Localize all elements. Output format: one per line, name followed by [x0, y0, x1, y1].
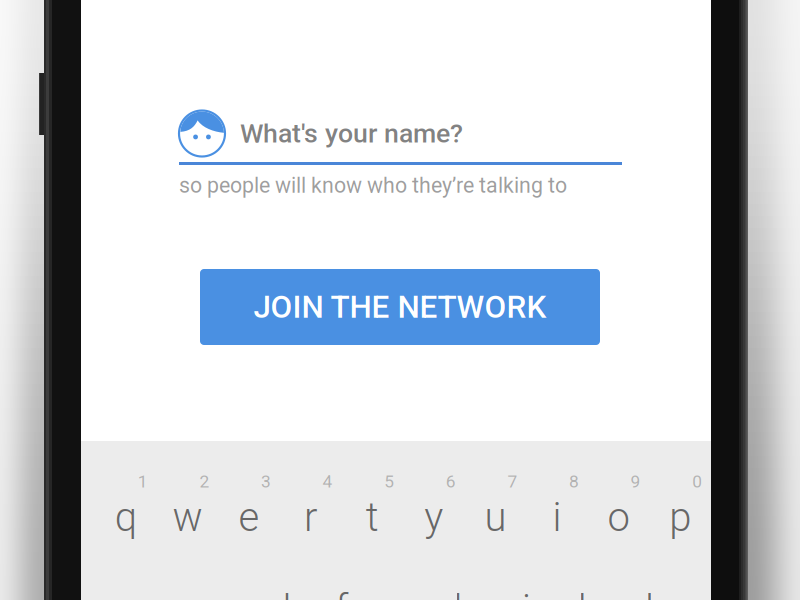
- staticText: q: [115, 494, 137, 541]
- staticText: o: [608, 494, 630, 541]
- staticText: i: [552, 494, 561, 541]
- staticText: 7: [507, 471, 517, 492]
- staticText: e: [238, 494, 259, 541]
- button[interactable]: l: [619, 586, 680, 600]
- staticText: so people will know who they’re talking …: [179, 173, 567, 198]
- button[interactable]: What's your name?: [179, 110, 622, 165]
- staticText: 4: [323, 471, 333, 492]
- staticText: 8: [569, 471, 579, 492]
- staticText: 3: [261, 471, 271, 492]
- button[interactable]: f: [311, 586, 372, 600]
- staticText: 0: [692, 471, 702, 492]
- staticText: h: [454, 586, 476, 600]
- staticText: r: [304, 494, 317, 541]
- staticText: 1: [138, 471, 148, 492]
- button[interactable]: JOIN THE NETWORK: [200, 269, 600, 345]
- button[interactable]: 5: [341, 468, 403, 540]
- staticText: d: [269, 586, 291, 600]
- button[interactable]: 4: [280, 468, 341, 540]
- staticText: u: [484, 494, 506, 541]
- button[interactable]: 0: [649, 468, 711, 540]
- staticText: j: [522, 586, 531, 600]
- button[interactable]: j: [496, 586, 557, 600]
- button[interactable]: 7: [465, 468, 526, 540]
- staticText: 9: [631, 471, 641, 492]
- staticText: w: [172, 494, 202, 541]
- staticText: 2: [199, 471, 209, 492]
- button[interactable]: 2: [157, 468, 218, 540]
- button[interactable]: 6: [403, 468, 465, 540]
- button[interactable]: d: [249, 586, 311, 600]
- staticText: y: [424, 494, 443, 541]
- staticText: JOIN THE NETWORK: [253, 289, 546, 325]
- button[interactable]: 9: [588, 468, 649, 540]
- button[interactable]: k: [557, 586, 619, 600]
- button[interactable]: h: [434, 586, 496, 600]
- button[interactable]: 1: [95, 468, 157, 540]
- staticText: p: [669, 494, 691, 541]
- staticText: 6: [446, 471, 456, 492]
- staticText: What's your name?: [240, 118, 463, 149]
- staticText: k: [578, 586, 598, 600]
- staticText: l: [645, 586, 654, 600]
- button[interactable]: 3: [218, 468, 280, 540]
- staticText: f: [335, 586, 348, 600]
- staticText: 5: [384, 471, 394, 492]
- staticText: t: [366, 494, 379, 541]
- button[interactable]: 8: [526, 468, 588, 540]
